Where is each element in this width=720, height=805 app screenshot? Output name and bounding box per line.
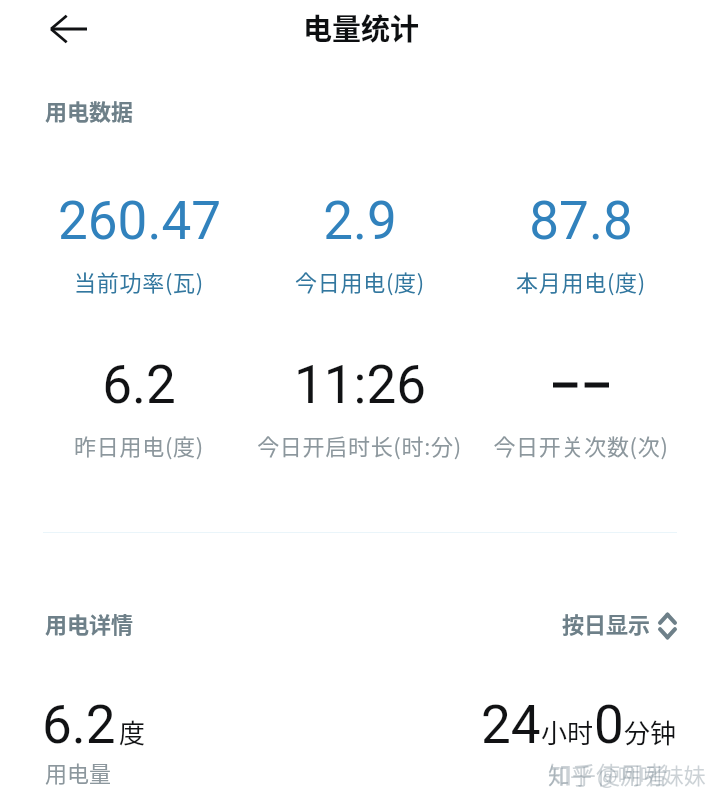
staticText: 电量统计: [303, 6, 420, 48]
staticText: 11:26: [294, 354, 426, 416]
staticText: 用电量: [45, 756, 112, 788]
staticText: 260.47: [58, 190, 221, 252]
staticText: 度: [119, 713, 146, 751]
button[interactable]: 按日显示: [562, 607, 677, 639]
staticText: 87.8: [529, 190, 633, 252]
staticText: 用电数据: [45, 94, 134, 126]
staticText: 知乎 @咧咧妹妹: [548, 758, 706, 790]
staticText: 6.2: [102, 354, 176, 416]
staticText: 2.9: [323, 190, 397, 252]
button[interactable]: Back: [45, 5, 93, 53]
staticText: 按日显示: [562, 607, 651, 639]
staticText: 分钟: [624, 713, 677, 751]
staticText: 知乎使用者: [548, 756, 668, 791]
staticText: 今日用电(度): [295, 265, 425, 297]
staticText: 本月用电(度): [516, 265, 646, 297]
staticText: 当前功率(瓦): [74, 265, 204, 297]
staticText: 用电详情: [45, 607, 134, 639]
staticText: 6.2: [42, 694, 116, 756]
staticText: 今日开关次数(次): [493, 429, 669, 461]
staticText: 0: [594, 694, 624, 756]
staticText: 小时: [541, 713, 594, 751]
staticText: 24: [481, 694, 541, 756]
staticText: 昨日用电(度): [74, 429, 204, 461]
staticText: 今日开启时长(时:分): [257, 429, 462, 461]
